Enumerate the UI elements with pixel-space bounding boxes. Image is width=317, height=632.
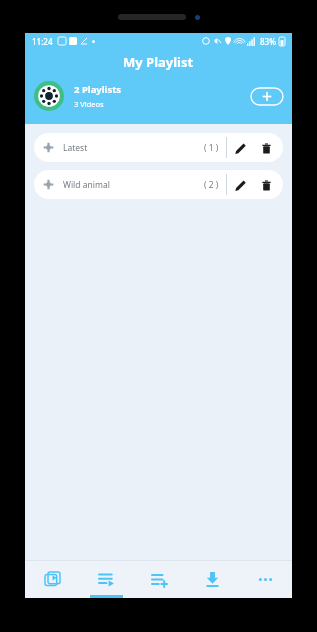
staticText: 11:24 xyxy=(32,36,53,47)
button[interactable]: More xyxy=(239,561,292,598)
staticText: 83% xyxy=(260,36,276,47)
button[interactable]: Edit xyxy=(227,172,253,198)
button[interactable]: Delete xyxy=(253,135,279,161)
button[interactable]: Reorder xyxy=(34,133,283,162)
button[interactable]: Add to playlist xyxy=(133,561,186,598)
other: Reorder xyxy=(43,179,54,190)
button[interactable]: Delete xyxy=(253,172,279,198)
other: Reorder xyxy=(43,142,54,153)
staticText: My Playlist xyxy=(123,53,194,71)
staticText: Latest xyxy=(63,142,88,154)
staticText: 2 Playlists xyxy=(74,83,122,96)
staticText: 3 Videos xyxy=(74,99,104,109)
button[interactable]: Playlists xyxy=(79,561,133,598)
button[interactable]: Downloads xyxy=(186,561,239,598)
staticText: ( 1 ) xyxy=(204,142,219,154)
button[interactable]: Reorder xyxy=(34,170,283,199)
button[interactable]: Add playlist xyxy=(251,88,283,105)
staticText: ( 2 ) xyxy=(204,179,219,191)
staticText: Wild animal xyxy=(63,179,110,191)
button[interactable]: Edit xyxy=(227,135,253,161)
button[interactable]: Video library xyxy=(25,561,79,598)
